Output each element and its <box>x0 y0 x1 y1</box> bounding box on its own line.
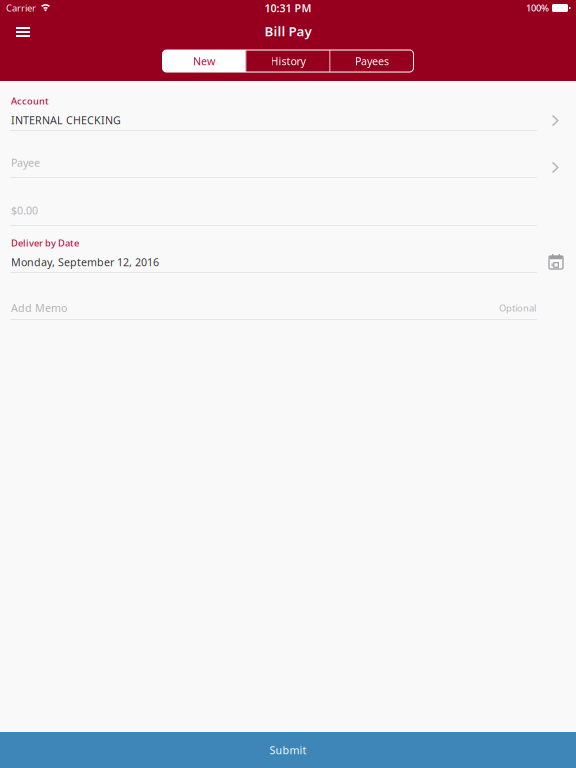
staticText: Optional <box>499 302 536 314</box>
staticText: INTERNAL CHECKING <box>11 113 121 127</box>
staticText: $0.00 <box>11 203 38 217</box>
button[interactable]: Payees <box>330 50 413 72</box>
staticText: History <box>270 54 305 68</box>
staticText: Deliver by Date <box>11 237 79 249</box>
staticText: 100% <box>526 2 549 14</box>
staticText: Account <box>11 95 49 107</box>
staticText: Monday, September 12, 2016 <box>11 255 159 269</box>
staticText: 10:31 PM <box>264 1 311 15</box>
button[interactable]: Account <box>0 81 576 131</box>
staticText: Add Memo <box>11 301 67 315</box>
button[interactable]: Submit <box>0 732 576 768</box>
staticText: Bill Pay <box>264 22 311 40</box>
button[interactable]: Payee <box>0 131 576 178</box>
button[interactable]: History <box>246 50 329 72</box>
button[interactable]: Deliver by Date <box>0 226 576 273</box>
button[interactable]: Menu <box>0 16 44 38</box>
staticText: Submit <box>269 743 306 757</box>
button[interactable]: New <box>162 50 245 72</box>
staticText: Payee <box>11 155 40 170</box>
staticText: New <box>193 54 215 68</box>
staticText: Carrier <box>6 2 36 14</box>
staticText: Payees <box>355 54 389 68</box>
button[interactable]: Add Memo <box>0 273 576 320</box>
button[interactable]: $0.00 <box>0 178 576 226</box>
